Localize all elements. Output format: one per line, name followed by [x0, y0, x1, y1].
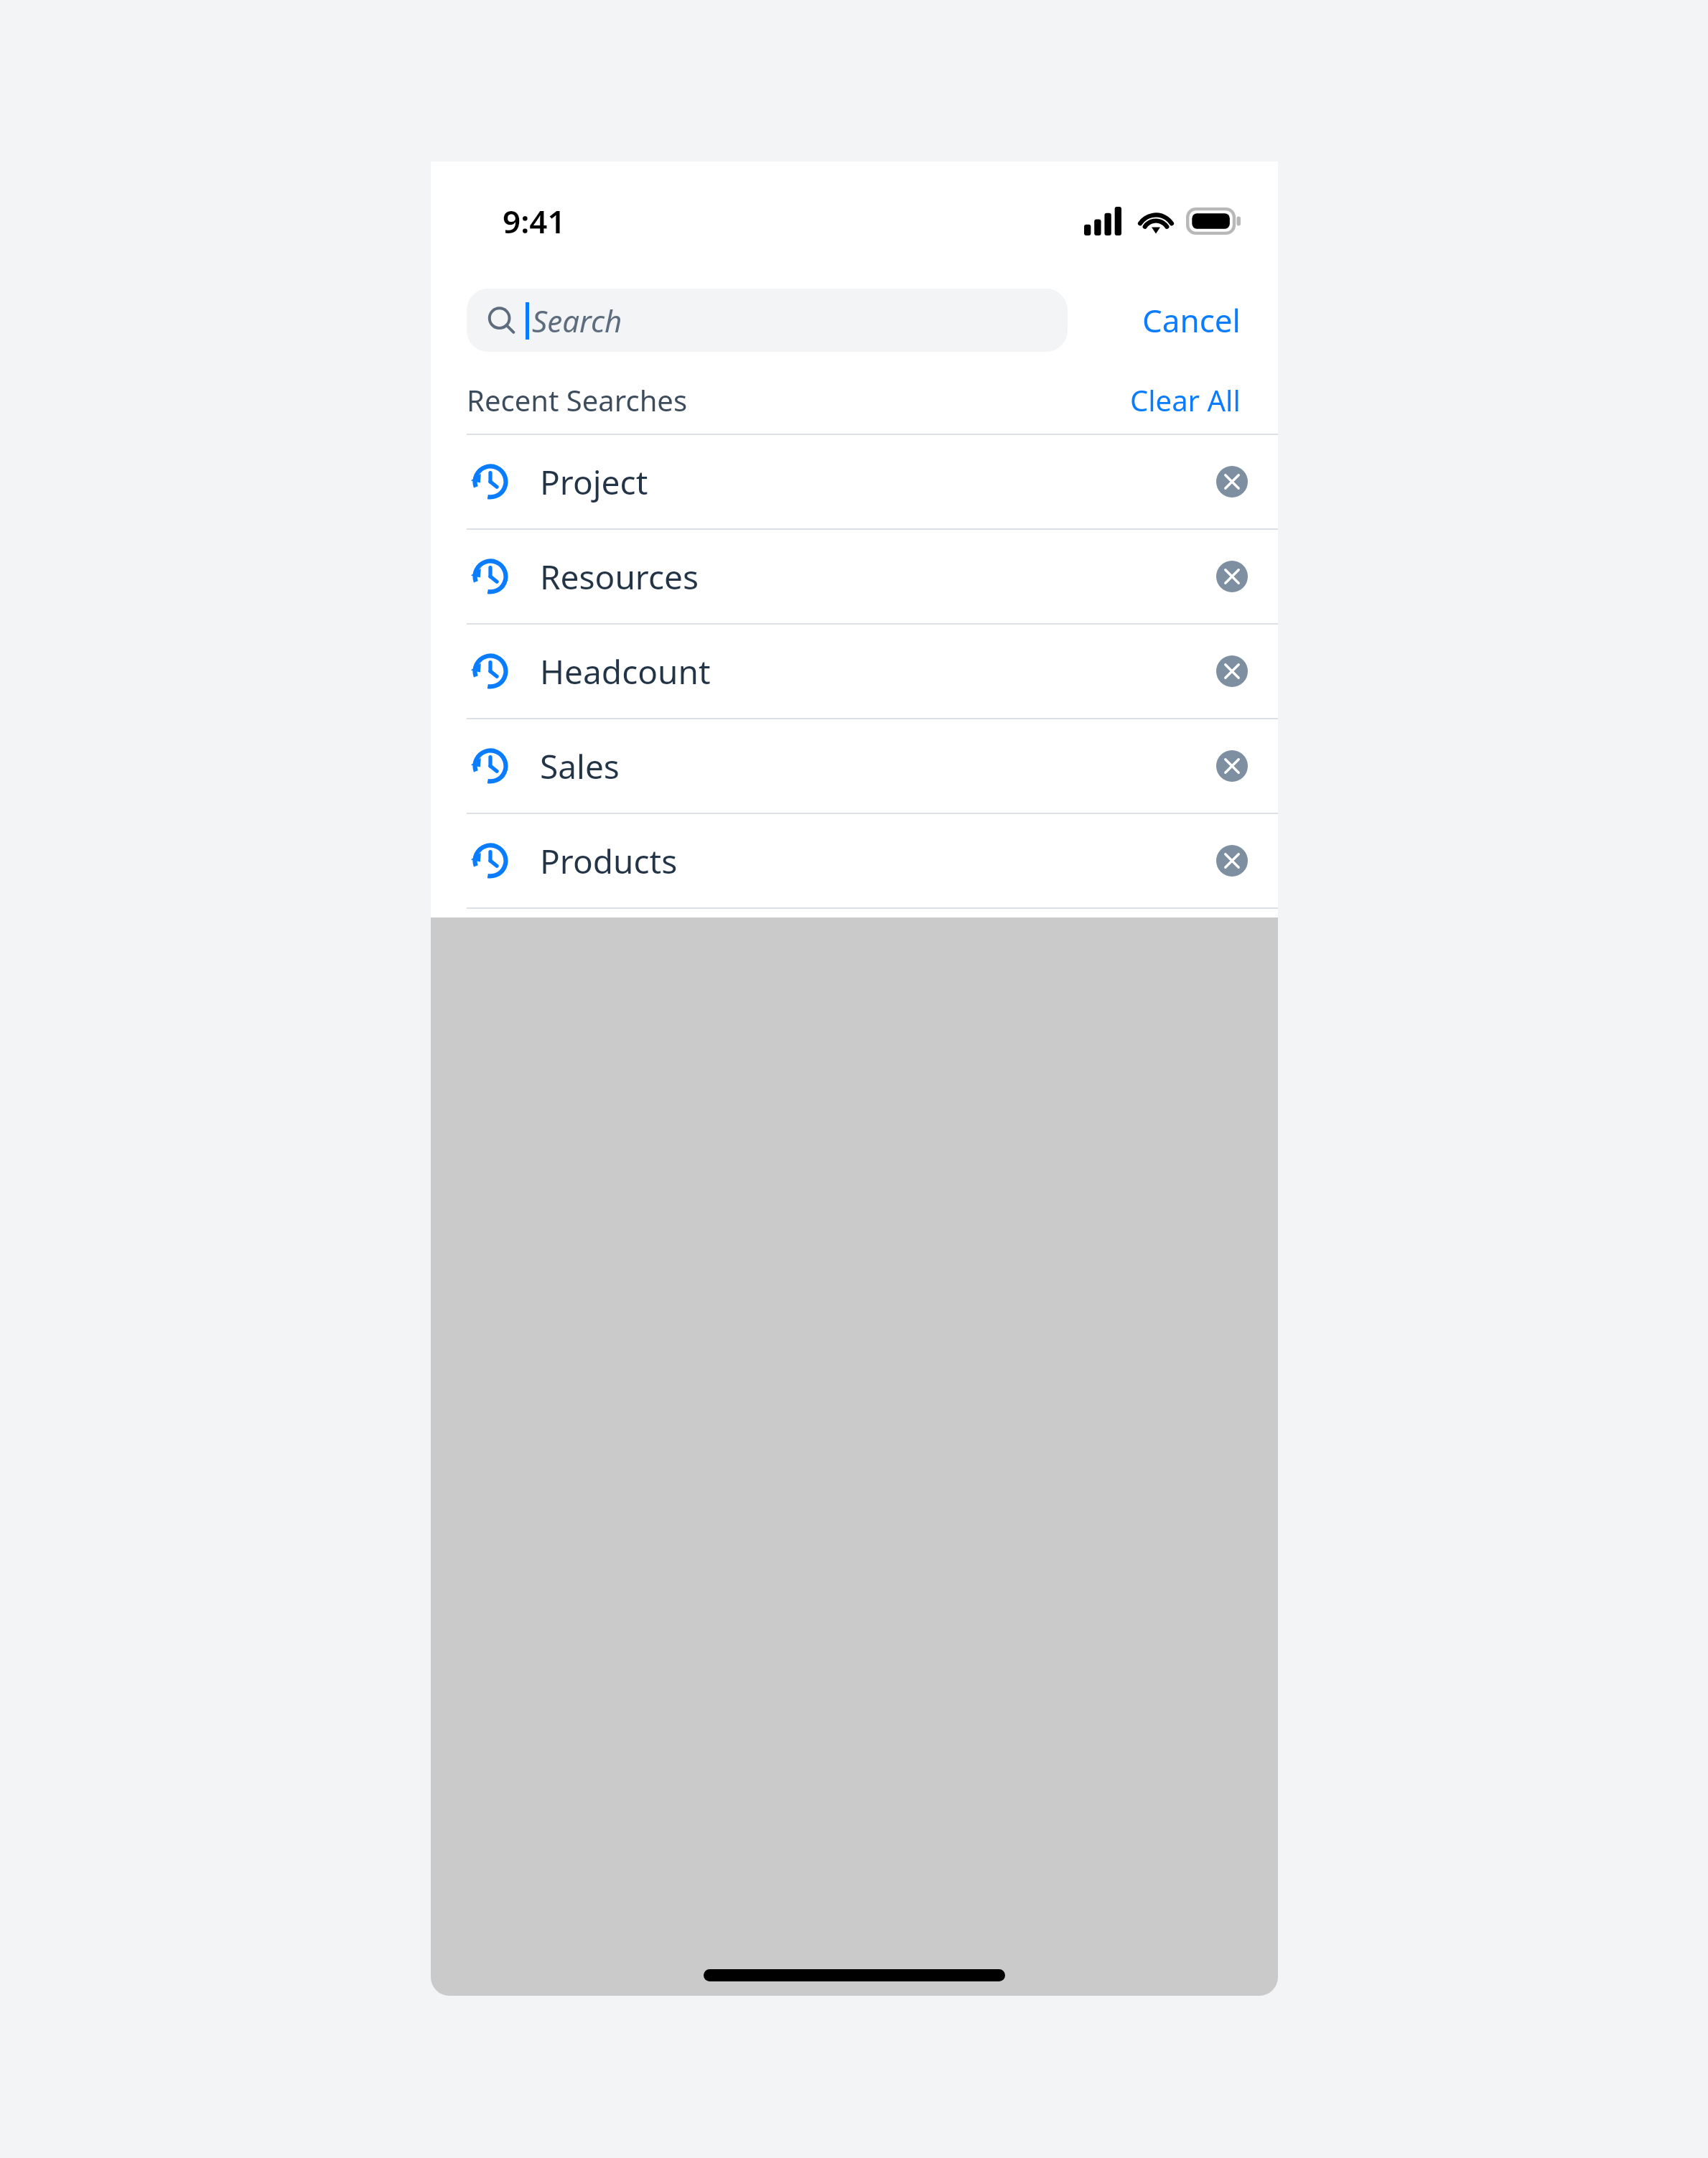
button[interactable]: Cancel: [1125, 289, 1258, 352]
button[interactable]: Sales: [431, 719, 1278, 813]
staticText: Products: [540, 839, 678, 884]
button[interactable]: Remove Products: [1202, 831, 1262, 891]
staticText: Headcount: [540, 649, 711, 694]
button[interactable]: Remove Sales: [1202, 736, 1262, 796]
button[interactable]: Remove Resources: [1202, 546, 1262, 607]
staticText: Recent Searches: [467, 380, 688, 419]
staticText: Clear All: [1130, 380, 1241, 419]
button[interactable]: Remove Headcount: [1202, 641, 1262, 701]
staticText: Search: [532, 300, 622, 341]
staticText: Project: [540, 459, 648, 505]
button[interactable]: Resources: [431, 530, 1278, 623]
button[interactable]: Clear All: [1114, 372, 1256, 428]
staticText: Cancel: [1142, 299, 1241, 342]
staticText: Sales: [540, 744, 620, 789]
staticText: Resources: [540, 554, 699, 599]
staticText: 9:41: [503, 200, 566, 243]
button[interactable]: Products: [431, 814, 1278, 907]
button[interactable]: Headcount: [431, 625, 1278, 718]
button[interactable]: Project: [431, 435, 1278, 528]
button[interactable]: Search: [467, 289, 1068, 352]
button[interactable]: Remove Project: [1202, 452, 1262, 512]
